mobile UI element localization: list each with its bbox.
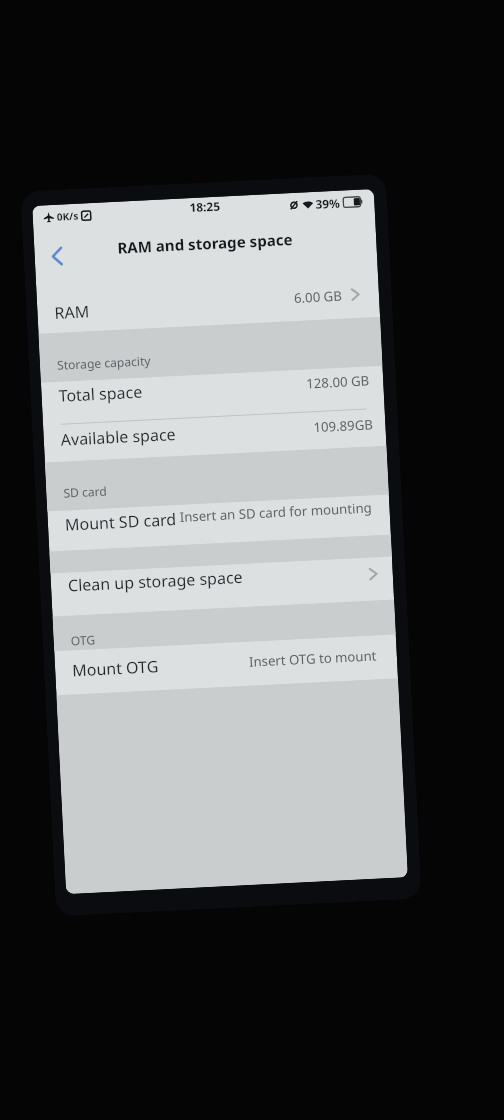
button[interactable]: Open: [344, 281, 366, 307]
button[interactable]: [41, 366, 385, 425]
staticText: Clean up storage space: [67, 566, 243, 596]
staticText: 39%: [315, 195, 341, 212]
staticText: Insert OTG to mount: [248, 646, 377, 671]
staticText: Available space: [60, 423, 176, 451]
staticText: 18:25: [189, 198, 221, 215]
staticText: Storage capacity: [57, 352, 151, 373]
staticText: 6.00 GB: [294, 287, 342, 307]
staticText: Insert an SD card for mounting: [179, 498, 373, 526]
staticText: Total space: [58, 381, 143, 407]
staticText: Mount OTG: [72, 655, 160, 681]
button[interactable]: [47, 495, 391, 551]
staticText: SD card: [63, 482, 108, 501]
button[interactable]: Open: [362, 561, 384, 587]
button[interactable]: [50, 556, 394, 616]
button[interactable]: [54, 634, 398, 695]
staticText: OTG: [70, 631, 96, 648]
button[interactable]: [36, 267, 380, 334]
staticText: 0K/s: [56, 209, 79, 224]
staticText: RAM and storage space: [117, 229, 294, 259]
staticText: 109.89GB: [313, 415, 374, 436]
staticText: RAM: [54, 300, 90, 324]
staticText: Mount SD card: [64, 508, 177, 536]
staticText: 128.00 GB: [306, 371, 370, 392]
button[interactable]: [43, 408, 386, 463]
button[interactable]: Back: [34, 233, 80, 279]
